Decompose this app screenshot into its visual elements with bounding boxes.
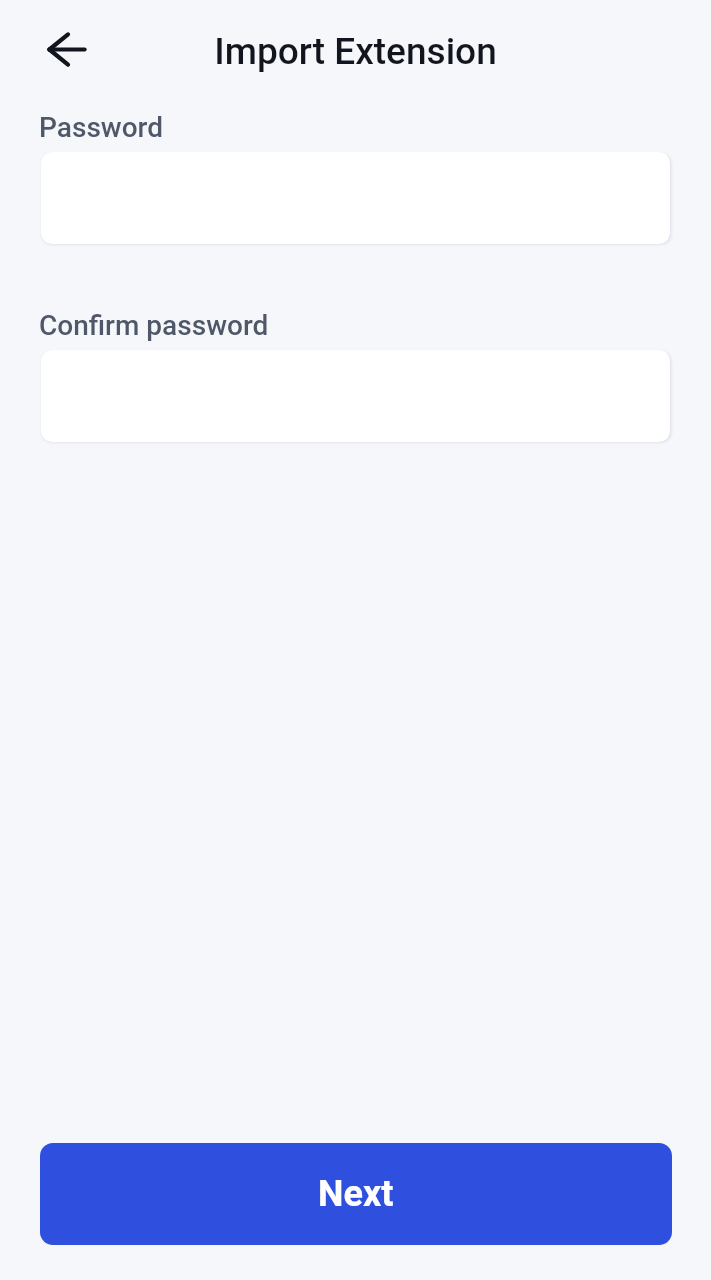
staticText: Confirm password [39,309,269,342]
button[interactable]: Next [40,1143,672,1245]
staticText: Password [39,111,164,144]
staticText: Import Extension [0,30,711,73]
button[interactable]: Back [39,21,95,77]
staticText: Next [318,1173,394,1215]
